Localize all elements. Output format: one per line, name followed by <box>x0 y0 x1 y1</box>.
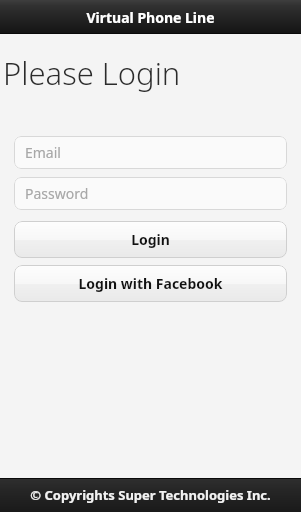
button[interactable]: Password <box>14 177 287 210</box>
button[interactable]: Login with Facebook <box>14 265 287 302</box>
staticText: Email <box>25 143 61 162</box>
staticText: Please Login <box>3 52 181 94</box>
staticText: Login <box>131 230 170 249</box>
staticText: Virtual Phone Line <box>86 8 215 27</box>
staticText: © Copyrights Super Technologies Inc. <box>30 486 271 504</box>
button[interactable]: Login <box>14 221 287 258</box>
staticText: Password <box>25 184 89 203</box>
staticText: Login with Facebook <box>78 274 223 293</box>
button[interactable]: Email <box>14 136 287 169</box>
